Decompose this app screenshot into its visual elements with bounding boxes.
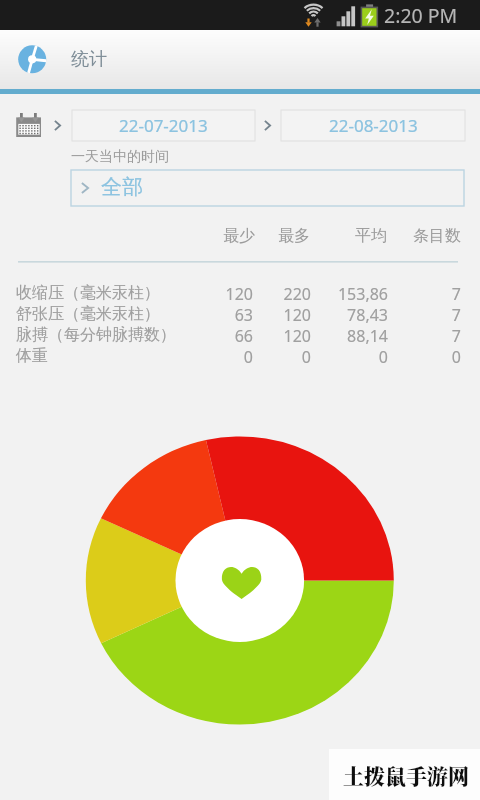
staticText: 体重 bbox=[16, 346, 48, 366]
button[interactable]: 22-08-2013 bbox=[281, 110, 465, 141]
staticText: 舒张压（毫米汞柱） bbox=[16, 304, 160, 324]
staticText: 220 bbox=[231, 283, 311, 304]
staticText: 0 bbox=[308, 346, 388, 367]
staticText: 脉搏（每分钟脉搏数） bbox=[16, 325, 176, 345]
staticText: 7 bbox=[381, 304, 461, 325]
button[interactable]: 体重 bbox=[0, 346, 480, 367]
staticText: 0 bbox=[231, 346, 311, 367]
staticText: 120 bbox=[231, 325, 311, 346]
staticText: 63 bbox=[173, 304, 253, 325]
other: Calendar bbox=[16, 109, 41, 134]
staticText: 78,43 bbox=[308, 304, 388, 325]
staticText: 22-08-2013 bbox=[329, 114, 418, 137]
staticText: 66 bbox=[173, 325, 253, 346]
button[interactable]: 脉搏（每分钟脉搏数） bbox=[0, 325, 480, 346]
staticText: 88,14 bbox=[308, 325, 388, 346]
staticText: 153,86 bbox=[308, 283, 388, 304]
button[interactable]: 统计 bbox=[0, 30, 480, 89]
staticText: 最多 bbox=[220, 226, 310, 246]
staticText: 22-07-2013 bbox=[119, 114, 208, 137]
button[interactable]: 全部 bbox=[71, 170, 464, 206]
staticText: 7 bbox=[381, 325, 461, 346]
staticText: 收缩压（毫米汞柱） bbox=[16, 283, 160, 303]
button[interactable]: 收缩压（毫米汞柱） bbox=[0, 283, 480, 304]
staticText: 120 bbox=[173, 283, 253, 304]
staticText: 7 bbox=[381, 283, 461, 304]
staticText: 最少 bbox=[165, 226, 255, 246]
staticText: 2:20 PM bbox=[384, 2, 458, 29]
staticText: 条目数 bbox=[371, 226, 461, 246]
button[interactable]: 舒张压（毫米汞柱） bbox=[0, 304, 480, 325]
staticText: 平均 bbox=[297, 226, 387, 246]
staticText: 0 bbox=[381, 346, 461, 367]
button[interactable]: 22-07-2013 bbox=[72, 110, 255, 141]
staticText: 全部 bbox=[101, 174, 143, 200]
staticText: 一天当中的时间 bbox=[71, 148, 169, 166]
staticText: 统计 bbox=[71, 48, 107, 71]
staticText: 120 bbox=[231, 304, 311, 325]
staticText: 土拨鼠手游网 bbox=[343, 760, 469, 790]
staticText: 0 bbox=[173, 346, 253, 367]
